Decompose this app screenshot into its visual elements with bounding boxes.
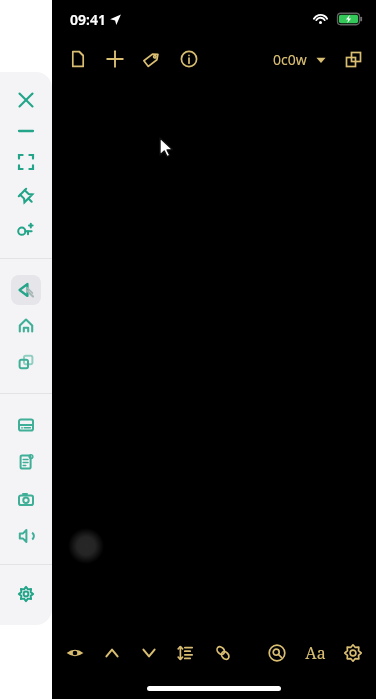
button[interactable]: Previous xyxy=(97,638,127,668)
button[interactable]: Next xyxy=(134,638,164,668)
staticText: 0c0w xyxy=(273,50,307,69)
button[interactable]: Tag xyxy=(136,43,168,75)
staticText: 09:41 xyxy=(70,10,106,29)
button[interactable]: Screenshot xyxy=(11,484,41,514)
button[interactable]: Pin window xyxy=(11,181,41,211)
button[interactable]: Info xyxy=(173,43,205,75)
button[interactable]: Line spacing xyxy=(171,638,201,668)
button[interactable]: Settings xyxy=(338,638,368,668)
button[interactable]: Minimize xyxy=(11,116,41,146)
button[interactable]: Link xyxy=(208,638,238,668)
button[interactable]: Add key xyxy=(11,215,41,245)
button[interactable]: Close xyxy=(11,85,41,115)
button[interactable]: Server xyxy=(11,410,41,440)
button[interactable]: Pointer tool xyxy=(11,275,41,305)
button[interactable]: Volume xyxy=(11,521,41,551)
button[interactable]: Home xyxy=(11,311,41,341)
button[interactable]: Windows xyxy=(11,347,41,377)
button[interactable]: Fullscreen xyxy=(11,147,41,177)
button[interactable]: Split view xyxy=(338,44,368,74)
button[interactable]: Report xyxy=(11,447,41,477)
button[interactable]: New document xyxy=(62,43,94,75)
button[interactable]: Preview xyxy=(60,638,90,668)
button[interactable]: Aa xyxy=(300,638,330,668)
button[interactable]: Add xyxy=(99,43,131,75)
button[interactable]: Search xyxy=(262,638,292,668)
button[interactable]: 0c0w xyxy=(269,46,332,73)
button[interactable]: Settings xyxy=(11,579,41,609)
staticText: Aa xyxy=(305,642,326,664)
